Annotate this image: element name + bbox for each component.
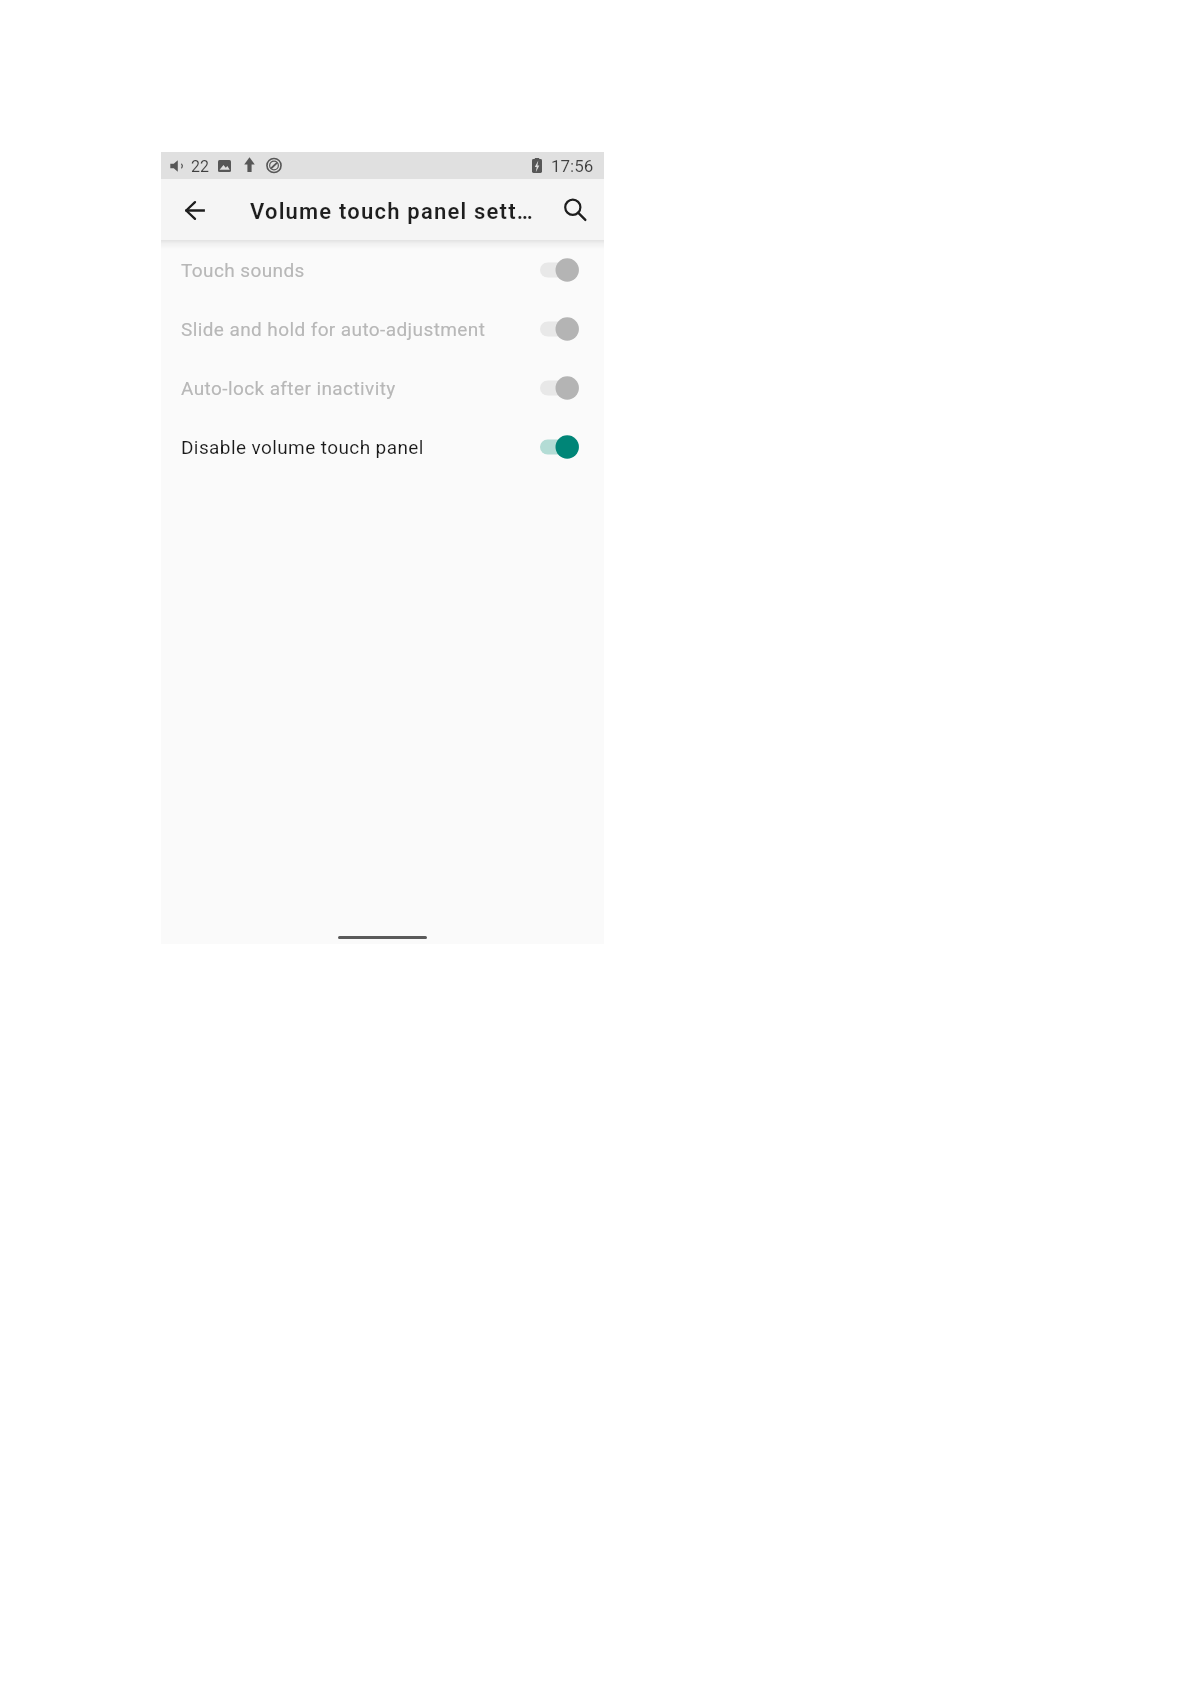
staticText: Disable volume touch panel	[181, 436, 424, 458]
button[interactable]: Auto-lock after inactivity	[161, 358, 604, 417]
button[interactable]: Touch sounds	[161, 240, 604, 299]
staticText: Volume touch panel sett…	[250, 199, 534, 225]
staticText: Auto-lock after inactivity	[181, 377, 396, 399]
button[interactable]: Slide and hold for auto-adjustment	[161, 299, 604, 358]
button[interactable]: Disable volume touch panel	[161, 417, 604, 476]
staticText: 22	[191, 157, 209, 176]
staticText: Slide and hold for auto-adjustment	[181, 318, 486, 340]
staticText: 17:56	[551, 156, 594, 176]
button[interactable]: Search	[557, 192, 593, 228]
staticText: Touch sounds	[181, 259, 305, 281]
button[interactable]: Navigate up	[177, 192, 213, 228]
